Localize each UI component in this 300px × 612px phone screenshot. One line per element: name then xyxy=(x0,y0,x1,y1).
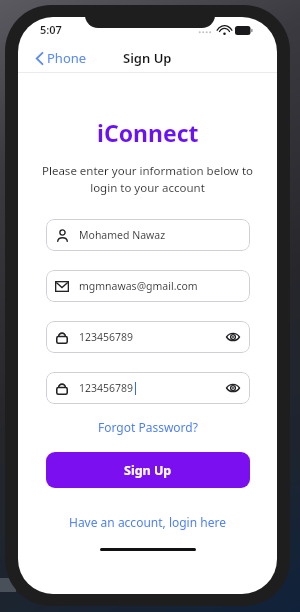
button[interactable]: Sign Up xyxy=(46,452,250,488)
staticText: 5:07 xyxy=(40,22,62,37)
staticText: Mohamed Nawaz xyxy=(79,228,166,242)
button[interactable]: 123456789 xyxy=(46,372,250,404)
button[interactable]: mgmnawas@gmail.com xyxy=(46,270,250,302)
staticText: Sign Up xyxy=(124,462,172,479)
staticText: iConnect xyxy=(97,117,199,148)
staticText: Forgot Password? xyxy=(98,419,198,435)
button[interactable]: Have an account, login here xyxy=(63,512,232,532)
button[interactable]: 123456789 xyxy=(46,321,250,353)
staticText: Phone xyxy=(47,49,87,67)
staticText: 123456789 xyxy=(79,381,134,395)
button[interactable]: Mohamed Nawaz xyxy=(46,219,250,251)
button[interactable]: Forgot Password? xyxy=(92,417,204,437)
staticText: Sign Up xyxy=(123,49,172,67)
button[interactable]: Show password xyxy=(225,329,241,345)
staticText: Please enter your information below to l… xyxy=(31,163,264,195)
staticText: mgmnawas@gmail.com xyxy=(79,279,198,293)
button[interactable]: Show password xyxy=(225,380,241,396)
staticText: Have an account, login here xyxy=(69,514,226,530)
staticText: 123456789 xyxy=(79,330,134,344)
button[interactable]: Phone xyxy=(32,43,91,73)
